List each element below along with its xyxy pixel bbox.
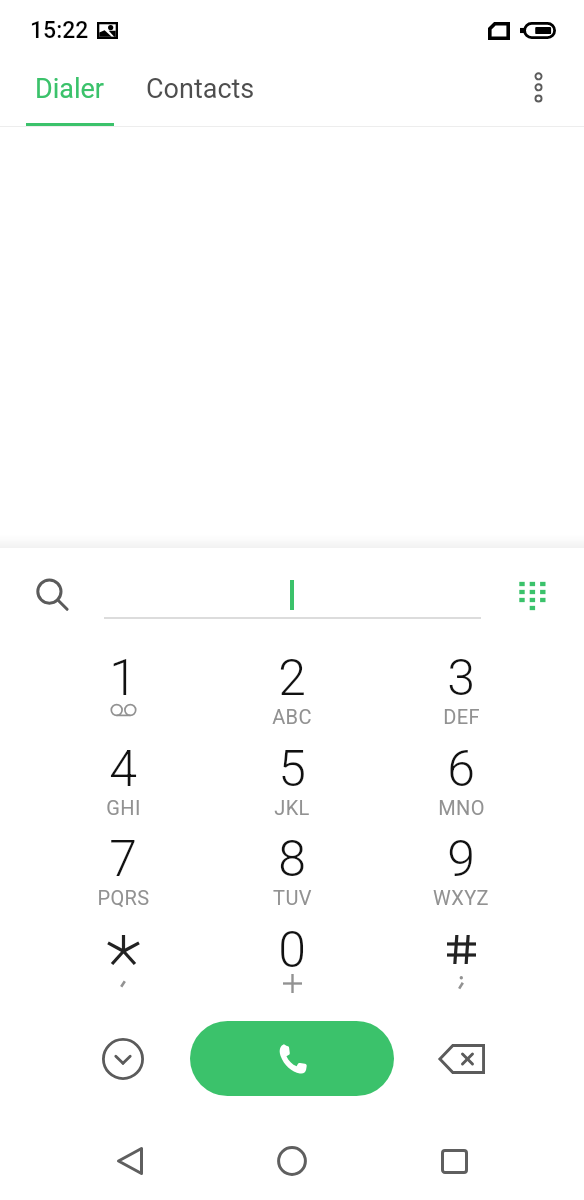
button[interactable]: 2 [212, 645, 372, 735]
staticText: 2 [278, 649, 306, 697]
button[interactable]: Home [262, 1131, 322, 1191]
button[interactable]: Dialpad [505, 570, 561, 626]
button[interactable]: Dialer [20, 54, 120, 122]
staticText: 3 [447, 649, 475, 697]
button[interactable]: 7 [43, 826, 203, 916]
button[interactable]: Recents [424, 1131, 484, 1191]
staticText: 1 [109, 649, 137, 697]
staticText: Dialer [35, 73, 105, 105]
staticText: DEF [443, 705, 480, 728]
staticText: 5 [278, 740, 306, 788]
button[interactable]: 8 [212, 826, 372, 916]
button[interactable]: 1 [43, 645, 203, 735]
button[interactable]: Search [22, 564, 77, 619]
staticText: WXYZ [433, 886, 489, 909]
button[interactable]: Hide dialpad [100, 1036, 146, 1082]
button[interactable]: 9 [381, 826, 541, 916]
button[interactable]: 3 [381, 645, 541, 735]
staticText: ABC [272, 705, 312, 728]
button[interactable]: 5 [212, 736, 372, 826]
staticText: 0 [278, 921, 306, 969]
staticText: Contacts [146, 73, 255, 105]
button[interactable] [43, 917, 203, 1007]
button[interactable]: Backspace [434, 1039, 488, 1079]
button[interactable]: 6 [381, 736, 541, 826]
button[interactable]: Call [190, 1021, 394, 1096]
staticText: JKL [274, 796, 310, 819]
button[interactable] [381, 917, 541, 1007]
button[interactable]: 4 [43, 736, 203, 826]
staticText: 7 [109, 830, 137, 878]
staticText: GHI [106, 796, 141, 819]
button[interactable]: Contacts [134, 54, 267, 122]
staticText: 8 [278, 830, 306, 878]
staticText: PQRS [97, 886, 150, 909]
staticText: 4 [109, 740, 137, 788]
staticText: 6 [447, 740, 475, 788]
button[interactable]: More options [514, 63, 562, 111]
staticText: 9 [447, 830, 475, 878]
staticText: TUV [273, 886, 312, 909]
button[interactable]: Back [100, 1131, 160, 1191]
staticText: 15:22 [30, 17, 89, 44]
staticText: MNO [438, 796, 485, 819]
button[interactable]: 0 [212, 917, 372, 1007]
